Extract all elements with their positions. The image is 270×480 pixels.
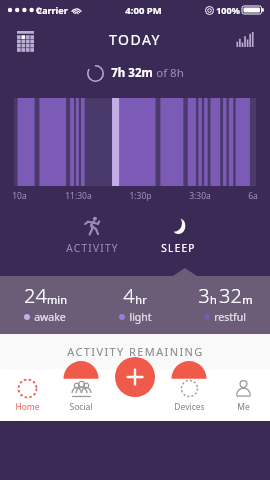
button[interactable]: Me (216, 369, 270, 421)
staticText: 4:00 PM (125, 4, 162, 17)
staticText: 11:30a (65, 190, 92, 202)
staticText: 10a (12, 190, 27, 202)
button[interactable]: Calendar (10, 24, 40, 54)
staticText: ACTIVITY (66, 241, 119, 255)
button[interactable]: ACTIVITY (49, 216, 135, 255)
staticText: min (47, 292, 67, 307)
staticText: 24 (24, 282, 47, 309)
staticText: awake (34, 310, 66, 324)
staticText: 7h 32m (111, 65, 153, 81)
staticText: light (129, 310, 152, 324)
button[interactable]: Home (0, 369, 54, 421)
staticText: Carrier (36, 4, 68, 16)
staticText: Me (237, 401, 250, 413)
staticText: 100% (216, 4, 240, 16)
staticText: 32 (219, 282, 242, 309)
staticText: hr (135, 292, 147, 307)
button[interactable]: Devices (162, 369, 216, 421)
staticText: SLEEP (161, 241, 196, 255)
button[interactable]: Statistics (230, 24, 260, 54)
staticText: restful (214, 310, 246, 324)
button[interactable]: Social (54, 369, 108, 421)
staticText: TODAY (109, 30, 161, 49)
staticText: m (242, 292, 253, 307)
staticText: 6a (248, 190, 258, 202)
staticText: 1:30p (129, 190, 152, 202)
staticText: Home (15, 401, 40, 413)
staticText: h (210, 292, 217, 307)
staticText: 3 (198, 282, 210, 309)
button[interactable]: Add (115, 357, 155, 397)
staticText: Social (69, 401, 93, 413)
button[interactable]: ACTIVITY REMAINING (0, 334, 270, 369)
staticText: 4 (123, 282, 135, 309)
staticText: 3:30a (189, 190, 211, 202)
staticText: ACTIVITY REMAINING (67, 344, 204, 359)
button[interactable]: SLEEP (135, 216, 221, 255)
staticText: of 8h (156, 65, 184, 81)
staticText: Devices (174, 401, 205, 413)
